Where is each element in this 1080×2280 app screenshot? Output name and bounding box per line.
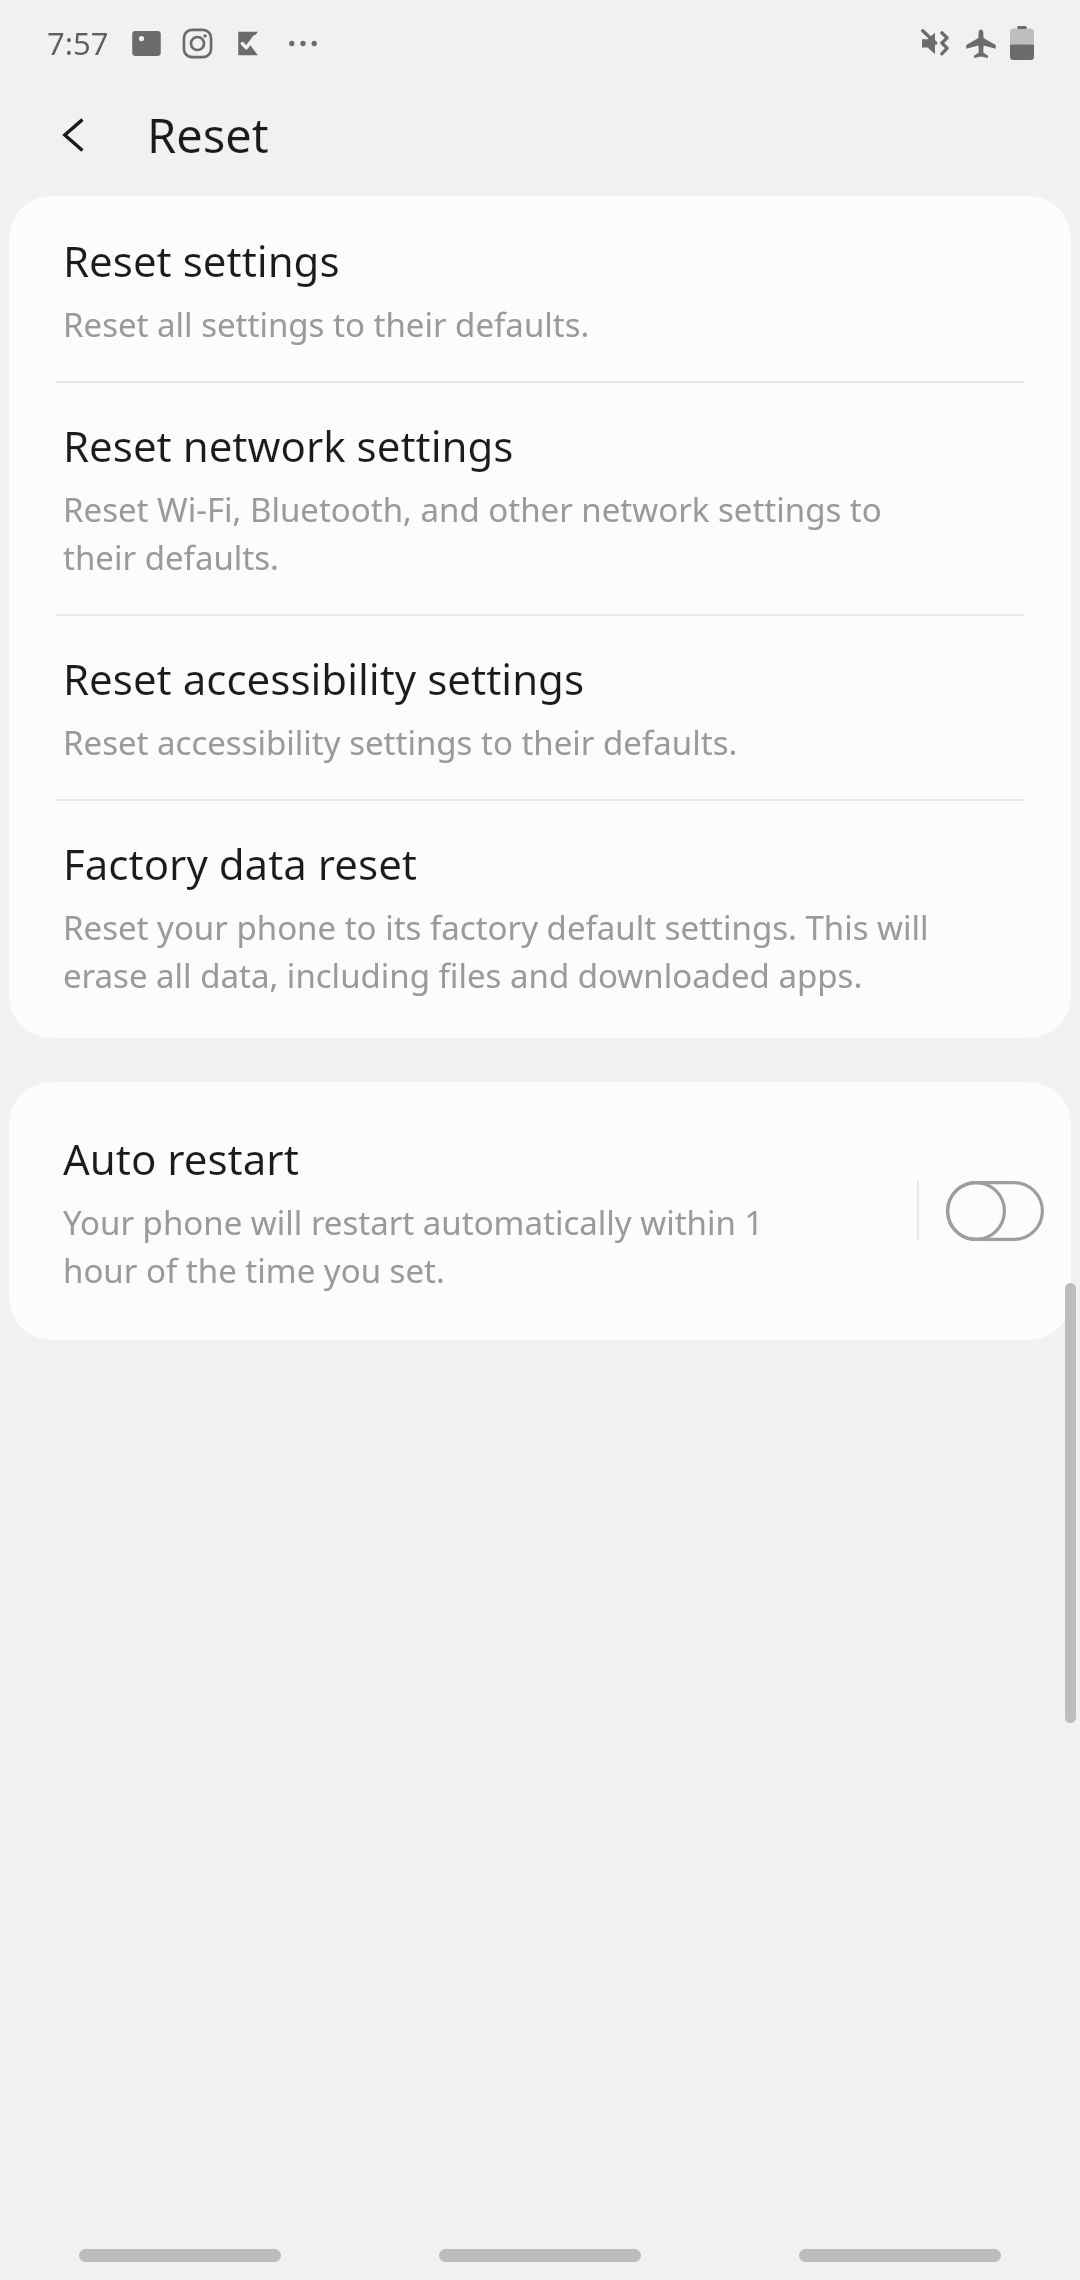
staticText: their defaults.	[63, 535, 279, 580]
staticText: erase all data, including files and down…	[63, 953, 863, 998]
button[interactable]: Home	[360, 2194, 720, 2280]
staticText: Reset all settings to their defaults.	[63, 302, 590, 347]
button[interactable]: Auto restart	[919, 1082, 1071, 1340]
staticText: hour of the time you set.	[63, 1248, 445, 1293]
staticText: Reset your phone to its factory default …	[63, 905, 929, 950]
button[interactable]: Recents	[0, 2194, 360, 2280]
staticText: Auto restart	[63, 1130, 299, 1187]
button[interactable]: Back	[720, 2194, 1080, 2280]
button[interactable]: Auto restart	[9, 1082, 917, 1340]
staticText: Reset Wi-Fi, Bluetooth, and other networ…	[63, 487, 882, 532]
staticText: Your phone will restart automatically wi…	[63, 1200, 764, 1245]
button[interactable]: Reset settings	[9, 196, 1071, 381]
staticText: Reset network settings	[63, 417, 514, 474]
button[interactable]: Reset network settings	[9, 383, 1071, 614]
staticText: Reset accessibility settings	[63, 650, 585, 707]
staticText: Reset	[147, 103, 269, 167]
button[interactable]: Factory data reset	[9, 801, 1071, 1038]
staticText: Reset accessibility settings to their de…	[63, 720, 738, 765]
button[interactable]: Reset accessibility settings	[9, 616, 1071, 799]
staticText: Factory data reset	[63, 835, 417, 892]
staticText: 7:57	[47, 22, 109, 64]
button[interactable]: Back	[36, 97, 112, 173]
staticText: Reset settings	[63, 232, 340, 289]
